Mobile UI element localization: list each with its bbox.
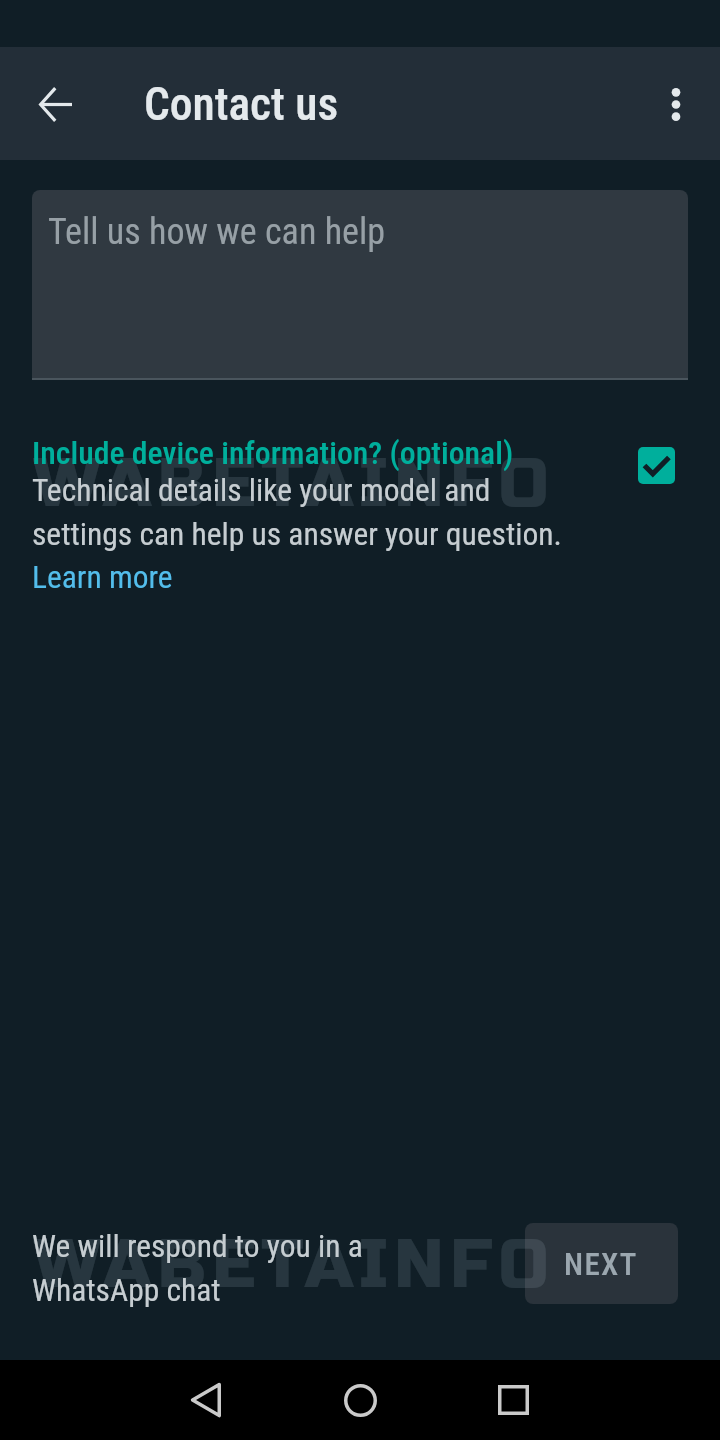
button[interactable]: Back [15,64,95,144]
button[interactable]: Include device information [620,429,692,501]
button[interactable]: Tell us how we can help [32,190,688,378]
staticText: WABETAINFO [33,445,550,525]
button[interactable]: Back [166,1360,246,1440]
staticText: WABETAINFO [33,1226,550,1306]
button[interactable]: Recent apps [473,1360,553,1440]
button[interactable]: Learn more [32,553,192,597]
staticText: We will respond to you in a WhatsApp cha… [32,1222,376,1310]
staticText: Contact us [144,78,339,131]
button[interactable]: More options [636,64,716,144]
staticText: NEXT [564,1246,638,1282]
button[interactable]: NEXT [525,1223,678,1304]
staticText: Include device information? (optional) [32,431,552,473]
button[interactable]: Home [320,1360,400,1440]
staticText: Technical details like your model and se… [32,466,572,554]
staticText: Tell us how we can help [48,211,386,253]
